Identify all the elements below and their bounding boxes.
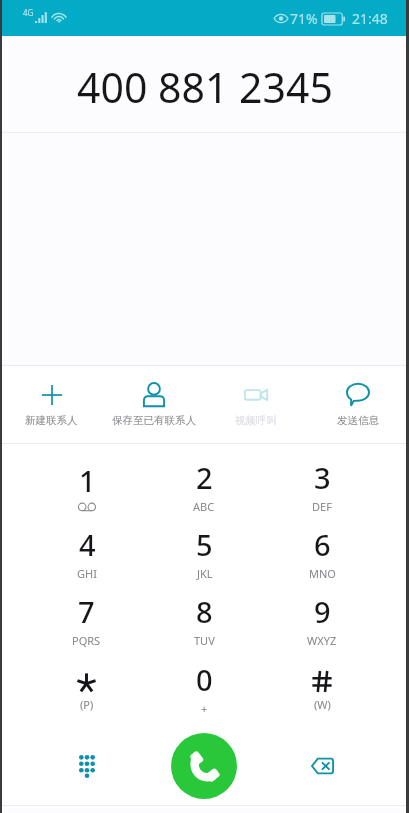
staticText: (P) [80,697,94,712]
staticText: 21:48 [352,9,388,28]
staticText: 8 [196,592,213,631]
button[interactable]: (W) [263,646,381,714]
button[interactable]: 5 [145,511,263,578]
staticText: 4 [79,525,96,564]
staticText: (W) [314,697,331,712]
staticText: 6 [314,525,331,564]
button[interactable]: 3 [263,444,381,511]
button[interactable]: 8 [145,578,263,646]
staticText: WXYZ [307,633,337,648]
button[interactable]: 新建联系人 [0,366,103,443]
button[interactable]: Hide keypad [28,719,145,811]
staticText: 保存至已有联系人 [112,414,196,427]
staticText: 71% [290,9,318,28]
button[interactable]: 0 [145,646,263,714]
staticText: 400 881 2345 [77,59,333,115]
staticText: 9 [314,592,331,631]
staticText: JKL [197,566,213,581]
staticText: GHI [77,566,97,581]
button[interactable]: 9 [263,578,381,646]
staticText: TUV [194,633,215,648]
button[interactable]: 保存至已有联系人 [103,366,205,443]
staticText: DEF [312,499,332,514]
staticText: 0 [196,660,213,699]
button[interactable]: Backspace [263,719,381,811]
staticText: 发送信息 [337,414,379,427]
button[interactable]: (P) [28,646,145,714]
button[interactable]: Call [171,733,237,799]
button[interactable]: 视频呼叫 [205,366,307,443]
staticText: 4G [23,7,34,18]
button[interactable]: 1 [28,444,145,511]
staticText: + [201,701,208,716]
staticText: 2 [196,458,213,497]
button[interactable]: 发送信息 [307,366,409,443]
button[interactable]: 4 [28,511,145,578]
staticText: 视频呼叫 [235,414,277,427]
staticText: MNO [309,566,336,581]
staticText: PQRS [72,633,101,648]
staticText: 7 [78,592,95,631]
staticText: 5 [196,525,213,564]
staticText: 新建联系人 [25,414,78,427]
staticText: 3 [314,458,331,497]
button[interactable]: 2 [145,444,263,511]
button[interactable]: 7 [28,578,145,646]
button[interactable]: 6 [263,511,381,578]
staticText: 1 [79,461,96,500]
staticText: ABC [193,499,215,514]
